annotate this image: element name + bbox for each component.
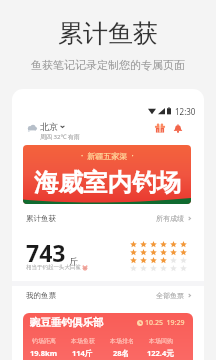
staticText: 周四 32℃ 有雨 <box>40 133 80 141</box>
staticText: 累计鱼获 <box>0 18 216 49</box>
staticText: 本场排名 <box>110 337 134 345</box>
staticText: 28名 <box>113 348 130 358</box>
button[interactable]: Notifications <box>172 122 184 134</box>
staticText: 122.4元 <box>147 348 174 358</box>
staticText: 全部鱼票 <box>156 291 184 300</box>
staticText: 钓场距离 <box>32 337 56 345</box>
staticText: 12:30 <box>175 106 196 115</box>
staticText: 我的鱼票 <box>26 291 56 300</box>
staticText: 鱼获笔记记录定制您的专属页面 <box>0 58 216 72</box>
staticText: 本场回购 <box>149 337 173 345</box>
staticText: 19.8km <box>30 348 57 358</box>
staticText: 海威室内钓场 <box>34 167 181 198</box>
staticText: 10.25 19:29 <box>145 318 185 328</box>
staticText: 累计鱼获 <box>26 214 56 223</box>
button[interactable]: 豌豆垂钓俱乐部 <box>23 313 193 360</box>
button[interactable]: Gift <box>154 122 166 134</box>
button[interactable]: 全部鱼票 <box>156 291 192 300</box>
staticText: 斤 <box>69 256 78 267</box>
staticText: 相当于钓起一头大白鲨 <box>26 264 81 271</box>
staticText: 本场鱼获 <box>71 337 95 345</box>
button[interactable]: · 新疆五家渠 · <box>23 145 191 204</box>
button[interactable]: 所有成绩 <box>156 214 192 223</box>
staticText: 所有成绩 <box>156 214 184 223</box>
staticText: 743 <box>26 237 66 268</box>
staticText: · 新疆五家渠 · <box>81 150 134 161</box>
staticText: 豌豆垂钓俱乐部 <box>30 316 104 329</box>
staticText: 114斤 <box>72 348 93 358</box>
staticText: 北京 <box>40 121 58 132</box>
